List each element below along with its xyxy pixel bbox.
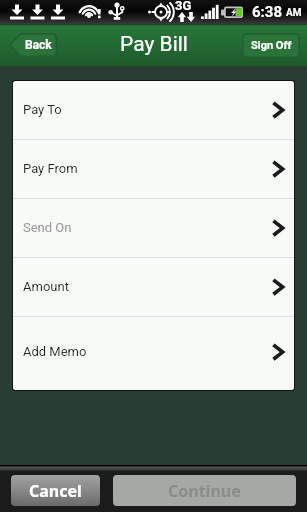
staticText: AM: [286, 7, 302, 19]
staticText: Send On: [23, 220, 72, 235]
button[interactable]: Add Memo: [13, 317, 294, 388]
staticText: Sign Off: [251, 39, 292, 52]
staticText: Pay To: [23, 102, 62, 117]
staticText: Pay From: [23, 161, 78, 176]
staticText: Continue: [168, 480, 241, 502]
button[interactable]: Amount: [13, 258, 294, 317]
button[interactable]: Pay To: [13, 81, 294, 140]
staticText: Amount: [23, 279, 69, 294]
button[interactable]: Send On: [13, 199, 294, 258]
staticText: 3G: [175, 0, 192, 13]
staticText: Cancel: [29, 480, 82, 502]
button[interactable]: Pay From: [13, 140, 294, 199]
staticText: Pay Bill: [120, 32, 188, 57]
button[interactable]: Continue: [113, 475, 296, 506]
staticText: Back: [25, 38, 52, 52]
staticText: 6:38: [252, 3, 283, 21]
button[interactable]: Back: [9, 33, 57, 57]
button[interactable]: Cancel: [11, 475, 100, 506]
button[interactable]: Sign Off: [242, 33, 300, 58]
staticText: Add Memo: [23, 344, 87, 359]
